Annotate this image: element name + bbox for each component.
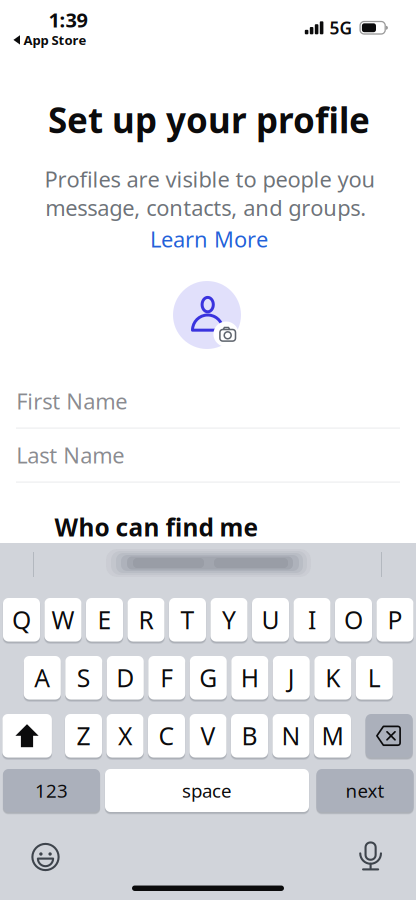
staticText: M [321, 719, 343, 753]
button[interactable]: O [335, 598, 372, 641]
button[interactable]: Y [210, 598, 247, 641]
button[interactable]: L [356, 656, 393, 699]
staticText: Y [222, 603, 236, 637]
staticText: D [116, 661, 134, 695]
staticText: J [288, 661, 295, 695]
button[interactable]: A [24, 656, 61, 699]
staticText: Learn More [150, 224, 268, 254]
button[interactable]: Dictate [360, 841, 381, 870]
button[interactable]: Last Name [0, 429, 416, 483]
button[interactable]: T [169, 598, 206, 641]
staticText: Z [76, 719, 90, 753]
staticText: T [180, 603, 194, 637]
staticText: First Name [16, 386, 127, 416]
staticText: N [281, 719, 300, 753]
button[interactable]: J [273, 656, 310, 699]
staticText: Who can find me [54, 510, 258, 544]
staticText: 1:39 [48, 6, 87, 33]
staticText: space [182, 778, 232, 803]
button[interactable]: Add profile photo [173, 281, 245, 353]
staticText: O [344, 603, 363, 637]
staticText: W [51, 603, 74, 637]
button[interactable]: U [252, 598, 289, 641]
button[interactable]: C [148, 714, 185, 757]
button[interactable]: S [65, 656, 102, 699]
button[interactable]: K [314, 656, 351, 699]
staticText: K [325, 661, 340, 695]
staticText: F [160, 661, 173, 695]
staticText: 5G [329, 16, 352, 40]
staticText: L [368, 661, 381, 695]
button[interactable]: Delete [366, 714, 413, 757]
button[interactable]: I [293, 598, 330, 641]
button[interactable]: App Store [13, 31, 86, 49]
button[interactable]: W [44, 598, 81, 641]
button[interactable]: R [127, 598, 164, 641]
staticText: I [308, 603, 316, 637]
button[interactable]: Q [3, 598, 40, 641]
button[interactable]: next [316, 769, 413, 812]
button[interactable]: B [231, 714, 268, 757]
button[interactable]: First Name [0, 375, 416, 429]
staticText: X [118, 719, 132, 753]
button[interactable]: Z [65, 714, 102, 757]
button[interactable]: D [107, 656, 144, 699]
button[interactable]: G [190, 656, 227, 699]
staticText: R [138, 603, 153, 637]
button[interactable]: M [314, 714, 351, 757]
button[interactable]: Emoji [31, 843, 60, 871]
button[interactable]: V [189, 714, 226, 757]
button[interactable]: F [148, 656, 185, 699]
button[interactable]: Shift [2, 714, 52, 757]
staticText: S [77, 661, 91, 695]
staticText: Profiles are visible to people you [44, 164, 375, 194]
staticText: 123 [35, 778, 68, 803]
button[interactable]: H [231, 656, 268, 699]
staticText: H [241, 661, 259, 695]
button[interactable]: Learn More [150, 224, 268, 254]
staticText: message, contacts, and groups. [45, 192, 366, 222]
staticText: U [261, 603, 279, 637]
button[interactable]: N [272, 714, 309, 757]
staticText: C [158, 719, 174, 753]
staticText: E [97, 603, 111, 637]
staticText: Q [12, 603, 31, 637]
staticText: G [199, 661, 217, 695]
button[interactable]: E [86, 598, 123, 641]
button[interactable]: 123 [3, 769, 100, 812]
staticText: P [387, 603, 402, 637]
staticText: App Store [23, 31, 86, 49]
staticText: B [241, 719, 257, 753]
button[interactable]: space [105, 769, 309, 812]
staticText: next [345, 778, 384, 803]
button[interactable]: P [376, 598, 413, 641]
staticText: Set up your profile [48, 96, 370, 144]
staticText: V [200, 719, 215, 753]
button[interactable]: X [106, 714, 143, 757]
staticText: Last Name [16, 440, 124, 470]
staticText: A [34, 661, 50, 695]
